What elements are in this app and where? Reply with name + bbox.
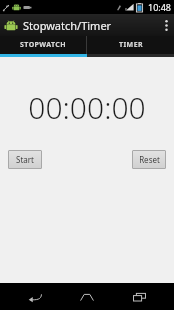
button[interactable]: Back: [18, 283, 52, 310]
button[interactable]: Home: [70, 283, 104, 310]
staticText: Stopwatch/Timer: [23, 18, 112, 33]
staticText: 00:00:00: [28, 87, 146, 128]
button[interactable]: Reset: [132, 150, 166, 169]
staticText: 10:48: [148, 1, 172, 13]
button[interactable]: App icon: [3, 18, 18, 33]
button[interactable]: STOPWATCH: [0, 36, 86, 54]
staticText: STOPWATCH: [20, 40, 66, 50]
staticText: TIMER: [119, 40, 143, 50]
button[interactable]: Recent apps: [122, 283, 156, 310]
button[interactable]: Start: [8, 150, 42, 169]
staticText: Start: [16, 154, 34, 165]
button[interactable]: More options: [158, 14, 174, 36]
staticText: Reset: [139, 154, 160, 165]
button[interactable]: TIMER: [87, 36, 174, 54]
